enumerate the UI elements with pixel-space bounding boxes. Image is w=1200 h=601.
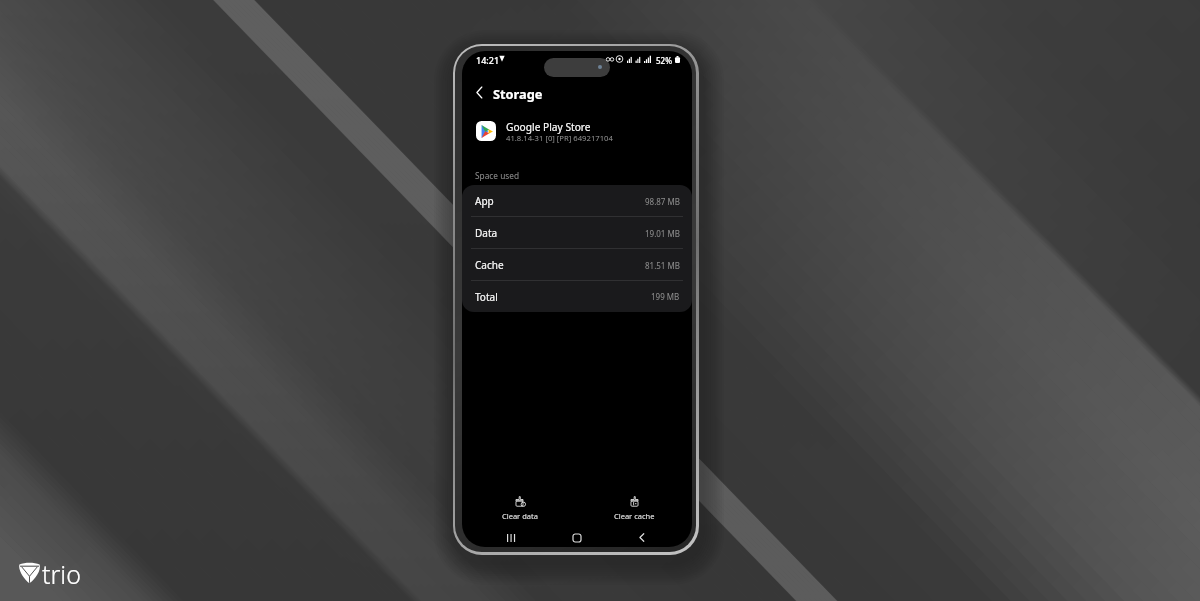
- button[interactable]: Total: [462, 281, 692, 312]
- staticText: Space used: [475, 170, 520, 181]
- staticText: Clear cache: [614, 511, 655, 521]
- staticText: Storage: [493, 85, 543, 102]
- staticText: Clear data: [502, 511, 538, 521]
- staticText: Google Play Store: [506, 120, 591, 134]
- staticText: 81.51 MB: [645, 260, 680, 271]
- button[interactable]: Recents: [496, 528, 526, 547]
- button[interactable]: Back: [627, 528, 657, 547]
- staticText: 199 MB: [651, 291, 680, 302]
- button[interactable]: Back: [468, 81, 490, 103]
- staticText: Total: [475, 290, 498, 304]
- staticText: 52%: [656, 55, 672, 66]
- staticText: trio: [42, 557, 81, 591]
- button[interactable]: Clear cache: [577, 496, 692, 531]
- staticText: Cache: [475, 258, 504, 272]
- button[interactable]: Home: [562, 528, 592, 547]
- button[interactable]: Data: [462, 217, 692, 249]
- button[interactable]: Clear data: [462, 496, 577, 531]
- staticText: App: [475, 194, 494, 208]
- staticText: Data: [475, 226, 498, 240]
- staticText: 41.8.14-31 [0] [PR] 649217104: [506, 133, 613, 143]
- button[interactable]: App: [462, 185, 692, 217]
- staticText: 19.01 MB: [645, 228, 680, 239]
- button[interactable]: Cache: [462, 249, 692, 281]
- staticText: 14:21: [476, 54, 500, 66]
- staticText: 98.87 MB: [645, 196, 680, 207]
